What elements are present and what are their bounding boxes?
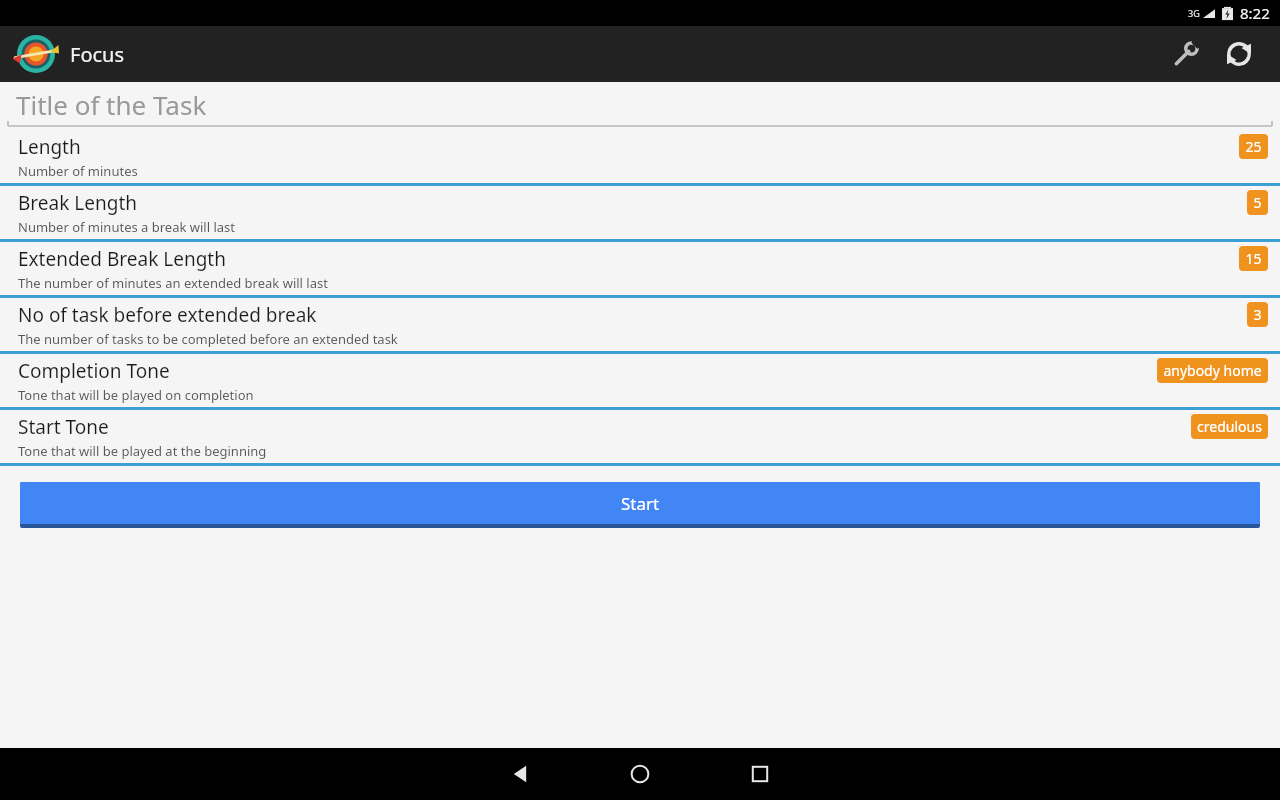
staticText: Length <box>18 134 81 160</box>
button[interactable]: Recent apps <box>700 748 820 800</box>
staticText: Tone that will be played at the beginnin… <box>18 442 267 460</box>
staticText: The number of minutes an extended break … <box>18 274 328 292</box>
staticText: Number of minutes a break will last <box>18 218 236 236</box>
staticText: Number of minutes <box>18 162 138 180</box>
button[interactable]: Home <box>580 748 700 800</box>
staticText: The number of tasks to be completed befo… <box>18 330 398 348</box>
staticText: anybody home <box>1163 361 1262 380</box>
staticText: Start <box>621 492 660 515</box>
staticText: Title of the Task <box>16 87 207 122</box>
button[interactable]: Start <box>20 482 1260 528</box>
staticText: Break Length <box>18 190 137 216</box>
staticText: No of task before extended break <box>18 302 317 328</box>
staticText: Extended Break Length <box>18 246 226 272</box>
button[interactable]: Completion Tone <box>0 354 1280 410</box>
button[interactable]: Back <box>460 748 580 800</box>
button[interactable]: No of task before extended break <box>0 298 1280 354</box>
staticText: Focus <box>70 41 125 68</box>
staticText: 3G <box>1188 7 1200 19</box>
button[interactable]: Break Length <box>0 186 1280 242</box>
button[interactable]: Settings <box>1158 27 1212 81</box>
button[interactable]: Start Tone <box>0 410 1280 466</box>
staticText: credulous <box>1197 417 1262 436</box>
button[interactable]: Title of the Task <box>0 82 1280 130</box>
staticText: Completion Tone <box>18 358 170 384</box>
staticText: 25 <box>1245 137 1262 156</box>
button[interactable]: Refresh <box>1212 27 1266 81</box>
button[interactable]: Extended Break Length <box>0 242 1280 298</box>
staticText: 5 <box>1253 193 1262 212</box>
staticText: 3 <box>1253 305 1262 324</box>
staticText: 8:22 <box>1240 3 1270 23</box>
staticText: Tone that will be played on completion <box>18 386 254 404</box>
staticText: Start Tone <box>18 414 109 440</box>
button[interactable]: Length <box>0 130 1280 186</box>
staticText: 15 <box>1245 249 1262 268</box>
